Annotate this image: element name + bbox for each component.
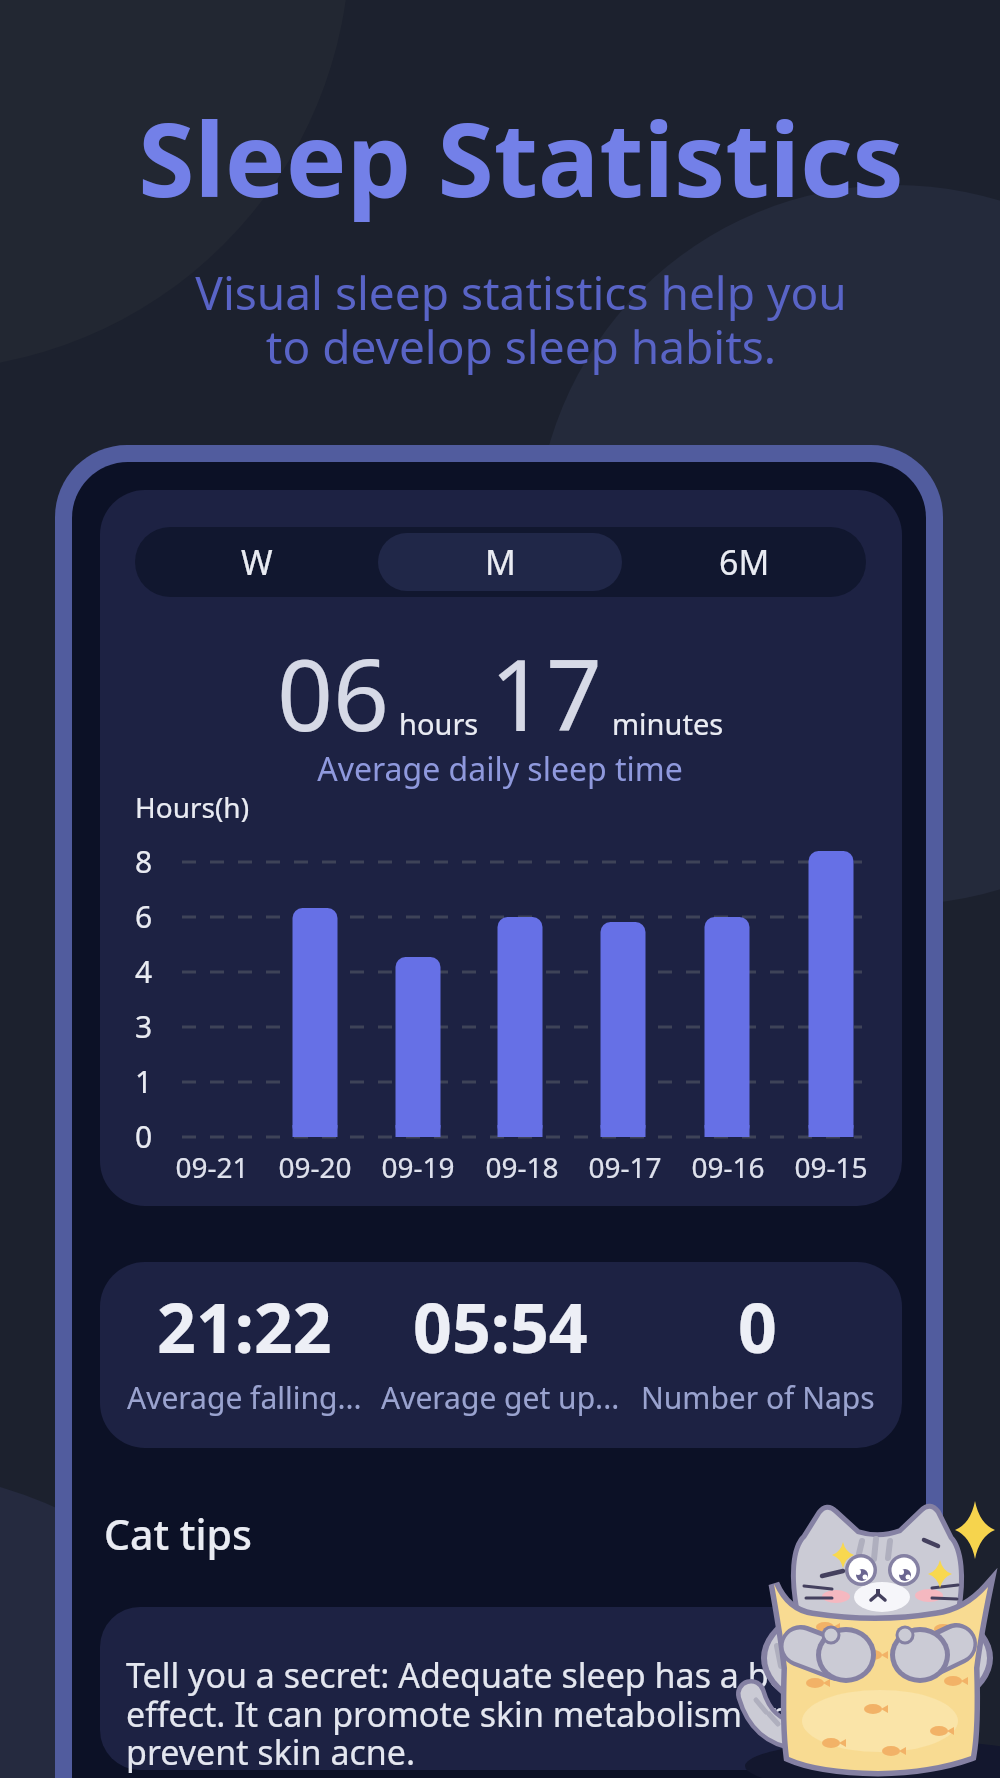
staticText: 21:22 bbox=[157, 1280, 332, 1373]
button[interactable]: 21:22 bbox=[116, 1262, 372, 1448]
staticText: Average daily sleep time bbox=[0, 747, 1000, 791]
staticText: Visual sleep statistics help you to deve… bbox=[21, 261, 1000, 378]
staticText: Average falling... bbox=[127, 1377, 362, 1418]
staticText: M bbox=[485, 539, 516, 585]
staticText: Sleep Statistics bbox=[21, 88, 1000, 227]
staticText: 05:54 bbox=[413, 1280, 588, 1373]
staticText: 8 bbox=[135, 841, 153, 882]
staticText: Average get up... bbox=[381, 1377, 620, 1418]
button[interactable]: M bbox=[378, 533, 622, 591]
staticText: 1 bbox=[135, 1061, 153, 1102]
staticText: 0 bbox=[738, 1280, 777, 1373]
staticText: 09-17 bbox=[565, 1148, 685, 1186]
staticText: 09-19 bbox=[358, 1148, 478, 1186]
staticText: 3 bbox=[135, 1006, 153, 1047]
staticText: 09-16 bbox=[668, 1148, 788, 1186]
staticText: hours bbox=[399, 704, 479, 743]
button[interactable]: 0 bbox=[629, 1262, 886, 1448]
staticText: Hours(h) bbox=[135, 788, 250, 826]
staticText: Cat tips bbox=[104, 1506, 252, 1562]
staticText: 09-18 bbox=[462, 1148, 582, 1186]
staticText: 17 bbox=[490, 626, 603, 759]
staticText: 4 bbox=[135, 951, 153, 992]
button[interactable]: 05:54 bbox=[372, 1262, 629, 1448]
button[interactable]: 6M bbox=[622, 527, 866, 597]
staticText: Number of Naps bbox=[641, 1377, 875, 1418]
staticText: 09-21 bbox=[152, 1148, 272, 1186]
staticText: 06 bbox=[277, 626, 390, 759]
staticText: Tell you a secret: Adequate sleep has a … bbox=[126, 1652, 916, 1775]
button[interactable]: W bbox=[135, 527, 378, 597]
staticText: 6 bbox=[135, 896, 153, 937]
staticText: 0 bbox=[135, 1116, 153, 1157]
staticText: minutes bbox=[612, 704, 724, 743]
staticText: 09-20 bbox=[255, 1148, 375, 1186]
staticText: 6M bbox=[719, 539, 770, 585]
staticText: W bbox=[241, 539, 273, 585]
staticText: 09-15 bbox=[771, 1148, 891, 1186]
